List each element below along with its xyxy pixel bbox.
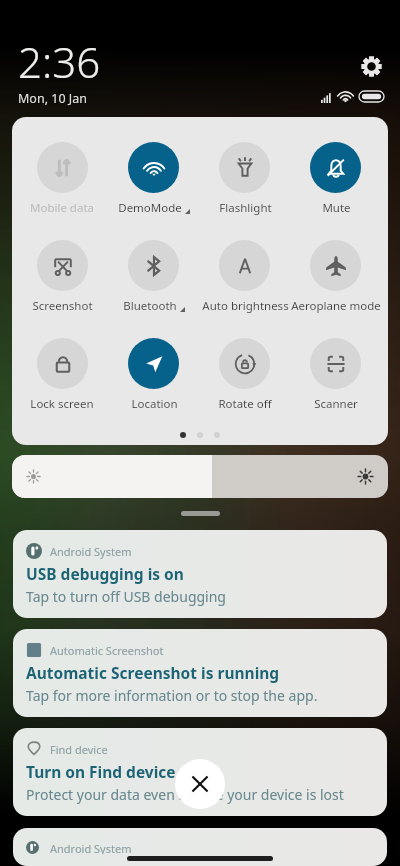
staticText: Auto brightness: [202, 298, 289, 314]
button[interactable]: DemoMode: [108, 142, 199, 216]
staticText: Lock screen: [30, 396, 94, 412]
staticText: Tap for more information or to stop the …: [26, 686, 318, 705]
staticText: Tap to turn off USB debugging: [26, 587, 226, 606]
button[interactable]: Brightness: [12, 455, 388, 498]
staticText: Screenshot: [32, 298, 93, 314]
staticText: Automatic Screenshot: [50, 643, 164, 658]
staticText: Mute: [322, 200, 351, 216]
button[interactable]: Mute: [290, 142, 381, 216]
button[interactable]: Scanner: [290, 338, 381, 412]
button[interactable]: Automatic Screenshot: [13, 629, 387, 717]
button[interactable]: Rotate off: [199, 338, 290, 412]
staticText: USB debugging is on: [26, 563, 184, 584]
button[interactable]: Find device: [13, 728, 387, 816]
staticText: 2:36: [18, 33, 101, 90]
staticText: Aeroplane mode: [291, 298, 381, 314]
staticText: Find device: [50, 742, 108, 757]
staticText: Android System: [50, 544, 132, 559]
button[interactable]: Clear all notifications: [175, 759, 225, 809]
button[interactable]: Mobile data: [16, 142, 108, 216]
staticText: Mon, 10 Jan: [18, 90, 87, 107]
button[interactable]: Auto brightness: [199, 240, 290, 314]
button[interactable]: Android System: [13, 530, 387, 618]
button[interactable]: Screenshot: [16, 240, 108, 314]
staticText: Mobile data: [30, 200, 94, 216]
staticText: Android System: [50, 841, 132, 854]
staticText: Automatic Screenshot is running: [26, 662, 280, 683]
button[interactable]: Aeroplane mode: [290, 240, 381, 314]
button[interactable]: Android System: [13, 828, 387, 866]
staticText: Scanner: [314, 396, 358, 412]
staticText: DemoMode: [118, 200, 182, 216]
staticText: Turn on Find device: [26, 761, 176, 782]
staticText: Flashlight: [219, 200, 272, 216]
staticText: Protect your data even in case your devi…: [26, 785, 344, 804]
staticText: Location: [131, 396, 178, 412]
button[interactable]: Settings: [358, 53, 384, 79]
button[interactable]: Bluetooth: [108, 240, 199, 314]
button[interactable]: Flashlight: [199, 142, 290, 216]
button[interactable]: Location: [108, 338, 199, 412]
staticText: Bluetooth: [123, 298, 177, 314]
staticText: Rotate off: [218, 396, 272, 412]
button[interactable]: Lock screen: [16, 338, 108, 412]
